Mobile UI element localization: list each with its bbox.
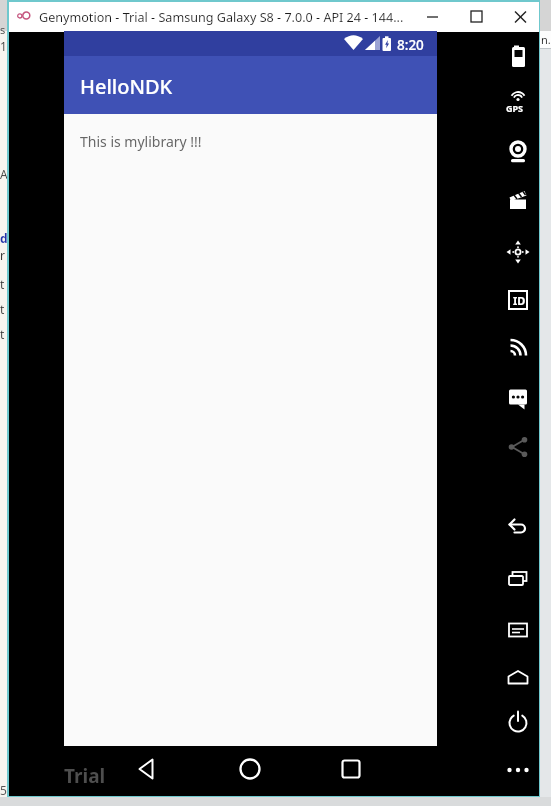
staticText: Trial [64,763,106,789]
staticText: This is mylibrary !!! [80,132,202,151]
staticText: 5 [0,782,7,797]
button[interactable] [505,335,531,361]
staticText: HelloNDK [80,73,173,100]
button[interactable] [505,90,531,116]
staticText: ID [513,293,526,308]
staticText: 8:20 [397,36,424,54]
staticText: n. [541,32,551,47]
staticText: d [0,230,8,246]
button[interactable] [505,758,531,784]
staticText: A [0,166,8,182]
staticText: t [0,301,5,317]
button[interactable] [339,757,363,781]
button[interactable] [461,2,491,31]
button[interactable] [505,434,531,460]
button[interactable] [505,617,531,643]
button[interactable] [505,139,531,165]
button[interactable] [505,566,531,592]
button[interactable] [505,239,531,265]
button[interactable] [417,2,447,31]
button[interactable] [505,709,531,735]
button[interactable]: ID [505,287,531,313]
staticText: r [0,247,5,263]
staticText: s [0,22,6,37]
staticText: t [0,326,5,342]
button[interactable] [238,757,262,781]
staticText: Genymotion - Trial - Samsung Galaxy S8 -… [39,9,404,26]
button[interactable] [505,516,531,542]
button[interactable] [505,187,531,213]
staticText: t [0,276,5,292]
button[interactable] [505,2,535,31]
button[interactable] [505,385,531,411]
button[interactable] [136,757,160,781]
staticText: GPS [506,102,524,114]
staticText: 1 [0,38,7,54]
button[interactable] [505,663,531,689]
button[interactable] [505,44,531,70]
